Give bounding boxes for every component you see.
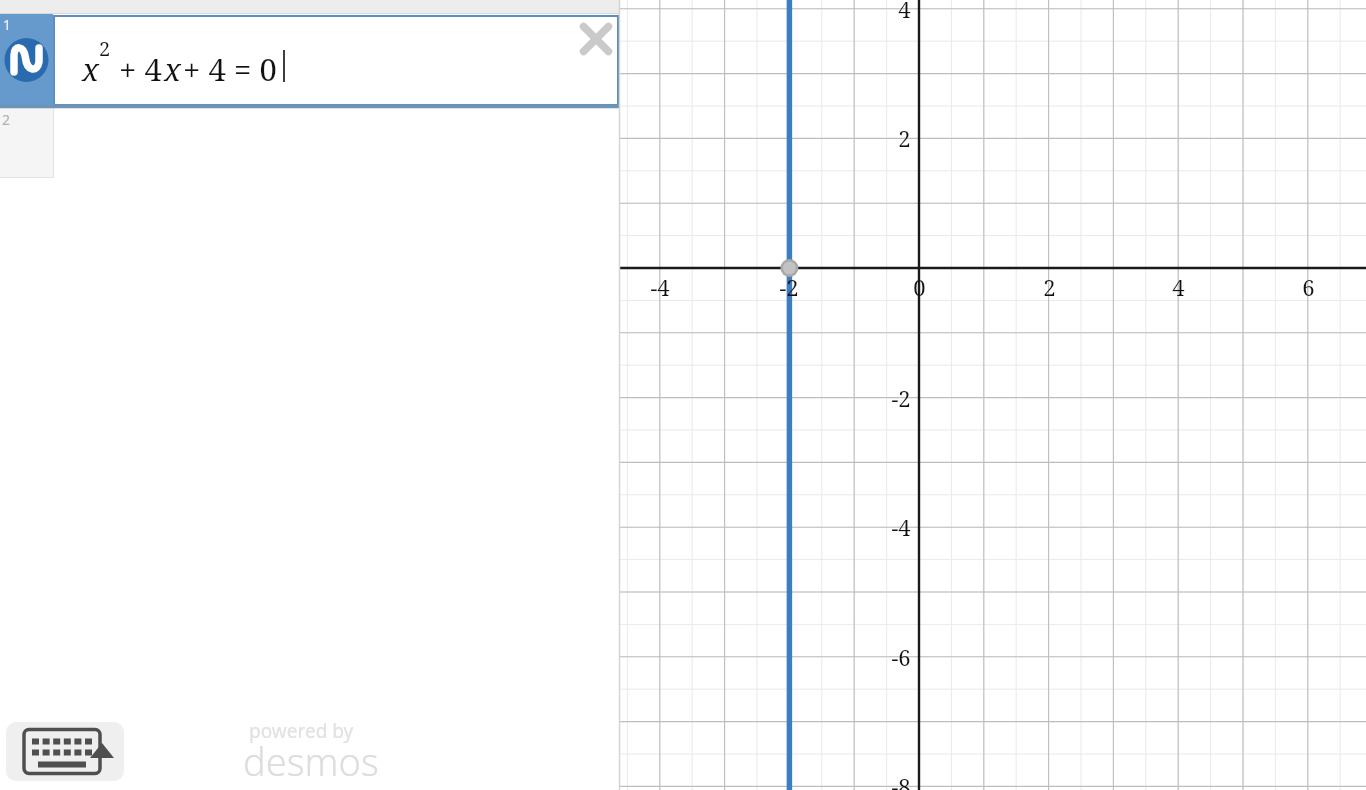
button[interactable] — [0, 14, 620, 107]
staticText: + 4 — [119, 48, 162, 90]
staticText: 2 — [99, 35, 111, 62]
staticText: 2 — [898, 123, 911, 153]
staticText: 4 — [1172, 272, 1185, 302]
staticText: 2 — [2, 110, 11, 129]
staticText: -4 — [650, 272, 670, 302]
staticText: = 0 — [234, 48, 277, 90]
staticText: 1 — [3, 15, 12, 34]
staticText: x — [82, 48, 99, 90]
staticText: 2 — [1043, 272, 1056, 302]
staticText: -4 — [891, 512, 911, 542]
staticText: 0 — [913, 272, 926, 302]
staticText: 6 — [1302, 272, 1315, 302]
staticText: -6 — [891, 642, 911, 672]
staticText: + 4 — [183, 48, 226, 90]
staticText: 4 — [898, 0, 911, 24]
button[interactable]: Toggle keyboard — [6, 722, 124, 781]
staticText: -2 — [779, 272, 799, 302]
staticText: powered by — [249, 718, 354, 744]
button[interactable]: Delete expression — [576, 19, 616, 59]
staticText: -2 — [891, 383, 911, 413]
staticText: -8 — [891, 771, 911, 790]
staticText: x — [164, 48, 181, 90]
staticText: desmos — [243, 735, 379, 787]
